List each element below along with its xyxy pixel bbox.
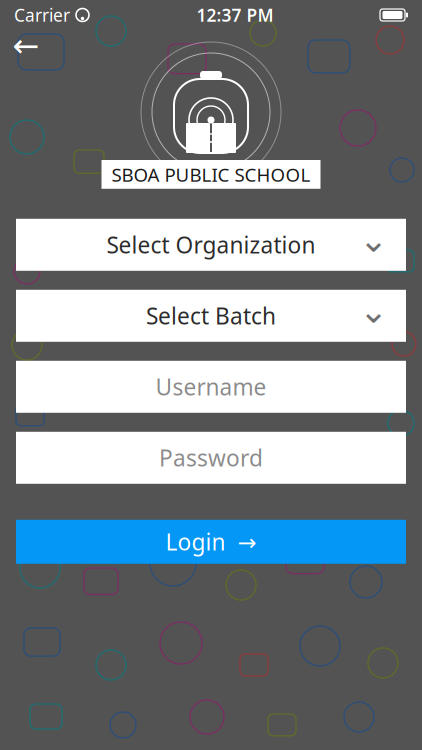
staticText: ← <box>12 28 39 64</box>
staticText: Login → <box>165 527 256 557</box>
staticText: 12:37 PM <box>196 3 273 26</box>
button[interactable]: Back <box>6 30 46 62</box>
button[interactable]: Select Organization <box>16 219 406 271</box>
button[interactable]: Login → <box>16 520 406 564</box>
staticText: ⌄ <box>359 291 388 330</box>
button[interactable]: Username <box>16 361 406 413</box>
staticText: Password <box>159 443 263 473</box>
staticText: SBOA PUBLIC SCHOOL <box>111 162 310 187</box>
button[interactable]: Select Batch <box>16 290 406 342</box>
staticText: Select Organization <box>106 230 315 260</box>
staticText: Username <box>155 372 266 402</box>
staticText: Carrier <box>14 3 70 26</box>
staticText: Select Batch <box>146 301 276 331</box>
staticText: ⌄ <box>359 220 388 259</box>
button[interactable]: Password <box>16 432 406 484</box>
